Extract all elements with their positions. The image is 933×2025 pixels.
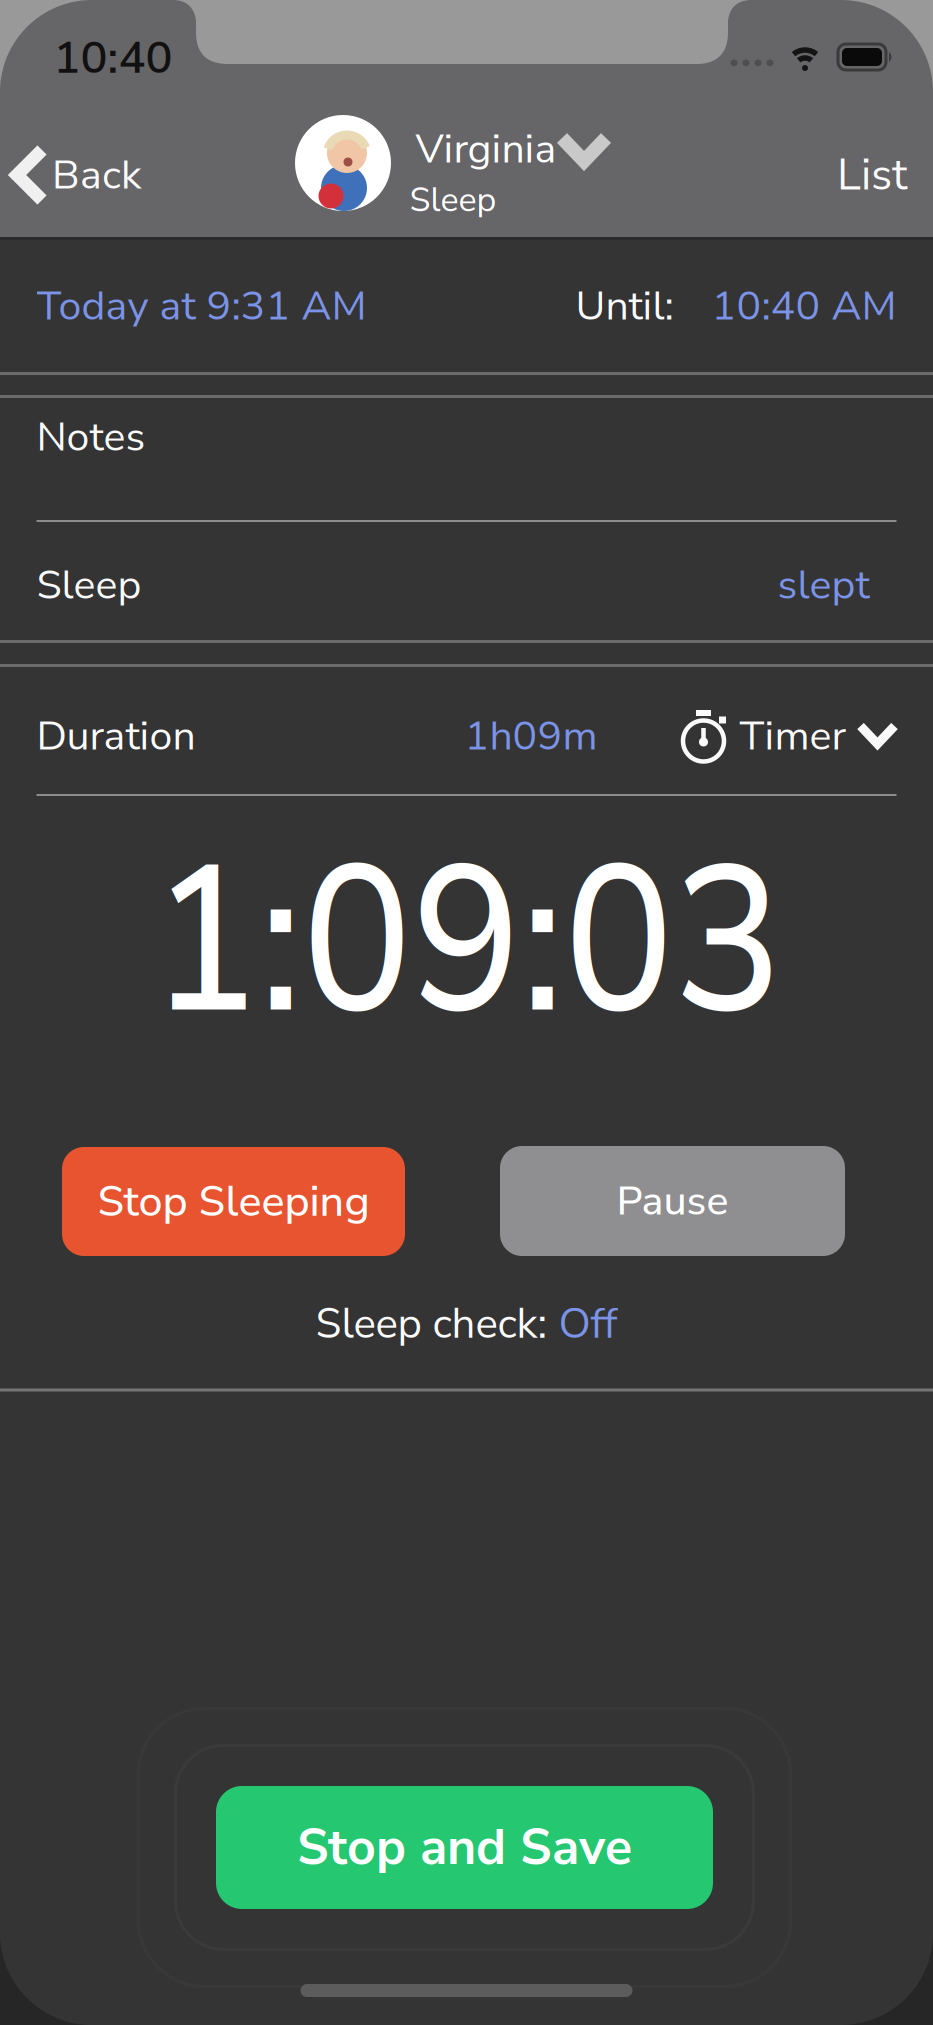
button[interactable]: Sleep check: <box>315 1295 617 1353</box>
button[interactable]: slept <box>777 557 869 613</box>
staticText: Timer <box>739 708 846 764</box>
staticText: List <box>837 145 907 205</box>
staticText: 10:40 <box>53 27 172 89</box>
staticText: Duration <box>36 708 195 764</box>
staticText: 10:40 AM <box>711 278 896 334</box>
staticText: Off <box>558 1295 617 1353</box>
button[interactable]: Pause <box>500 1146 845 1256</box>
button[interactable]: Today at 9:31 AM <box>36 278 366 334</box>
button[interactable]: Timer <box>681 708 896 764</box>
staticText: slept <box>777 557 869 613</box>
button[interactable]: 10:40 AM <box>711 278 896 334</box>
staticText: Stop Sleeping <box>97 1172 369 1231</box>
button[interactable]: Stop and Save <box>216 1786 713 1909</box>
staticText: Notes <box>36 409 145 465</box>
button[interactable]: Stop Sleeping <box>62 1147 405 1256</box>
staticText: 1h09m <box>464 708 597 764</box>
staticText: Sleep check: <box>315 1295 558 1353</box>
staticText: Back <box>52 147 142 203</box>
staticText: Stop and Save <box>297 1813 632 1882</box>
button[interactable]: Virginia <box>283 88 623 238</box>
staticText: Sleep <box>409 177 496 223</box>
staticText: Pause <box>616 1173 728 1229</box>
staticText: Sleep <box>36 557 141 613</box>
button[interactable]: Back <box>0 146 170 204</box>
button[interactable]: List <box>837 145 907 205</box>
staticText: Today at 9:31 AM <box>36 278 366 334</box>
staticText: Virginia <box>415 121 556 177</box>
staticText: Until: <box>575 278 673 334</box>
staticText: 1:09:03 <box>111 802 822 1082</box>
